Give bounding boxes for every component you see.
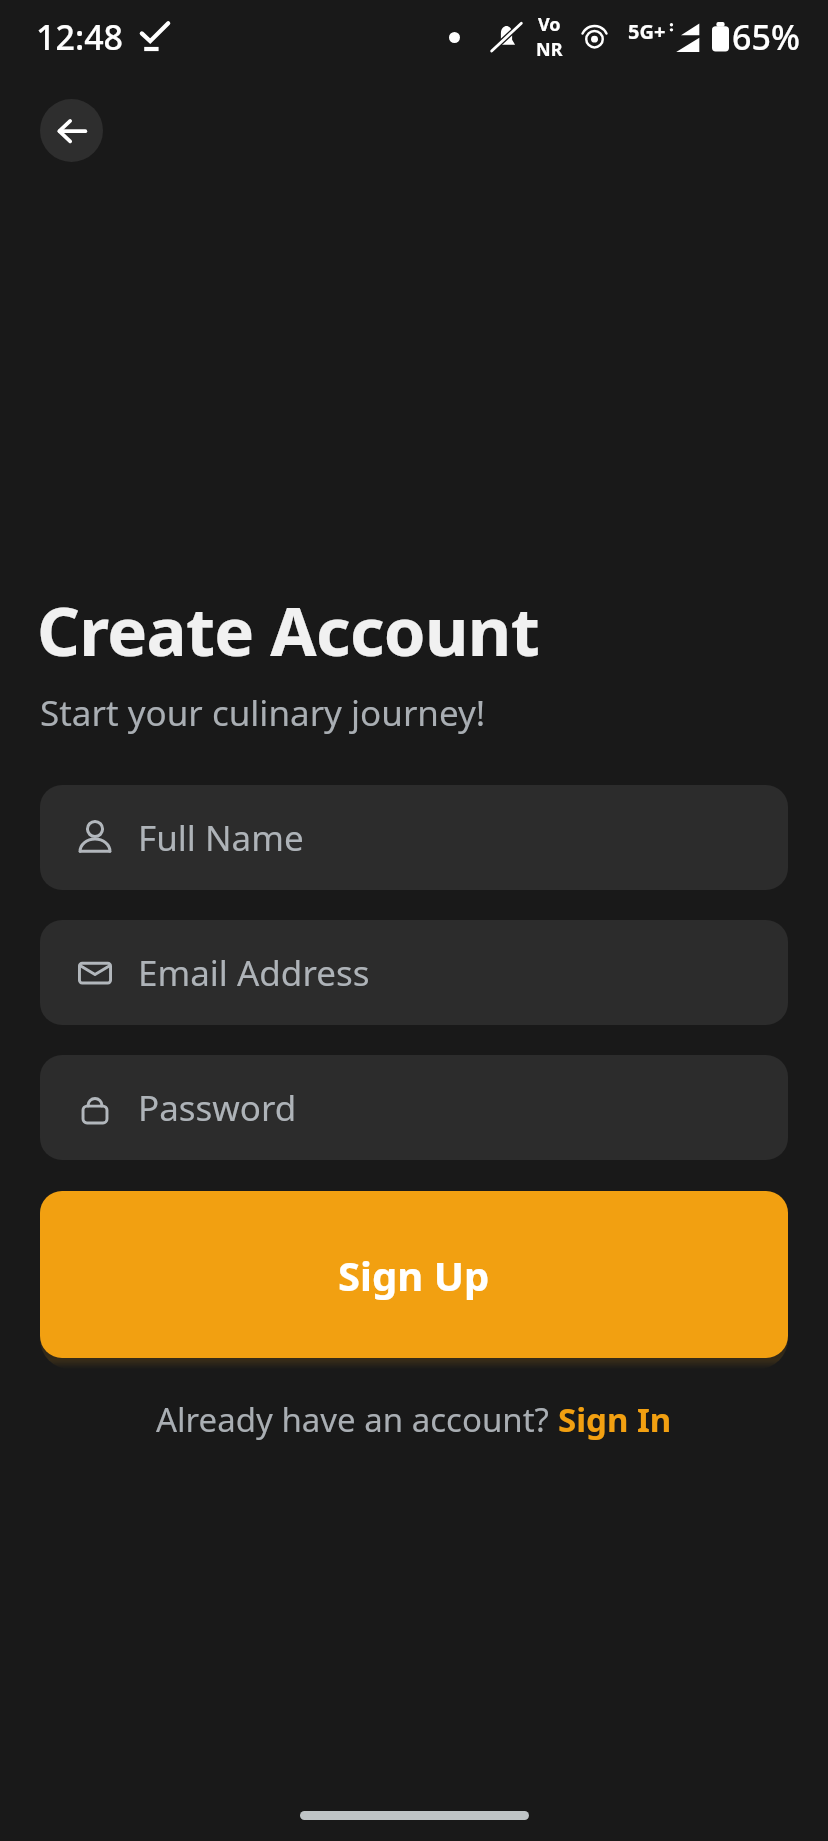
button[interactable]: Sign In [558, 1397, 672, 1442]
staticText: Sign In [558, 1397, 672, 1442]
staticText: 12:48 [36, 14, 124, 60]
button[interactable]: Password [40, 1055, 788, 1160]
button[interactable]: Back [40, 99, 103, 162]
staticText: Sign Up [338, 1248, 490, 1302]
staticText: Vo [538, 12, 561, 37]
staticText: Email Address [138, 949, 370, 997]
button[interactable]: Full Name [40, 785, 788, 890]
staticText: Already have an account? [156, 1397, 558, 1442]
button[interactable]: Sign Up [40, 1191, 788, 1358]
staticText: Password [138, 1084, 297, 1132]
staticText: NR [536, 37, 563, 62]
staticText: 65% [732, 14, 800, 60]
staticText: Create Account [37, 584, 540, 675]
staticText: Start your culinary journey! [40, 689, 486, 737]
staticText: 5G+ [628, 18, 666, 45]
button[interactable]: Email Address [40, 920, 788, 1025]
staticText: Full Name [138, 814, 304, 862]
